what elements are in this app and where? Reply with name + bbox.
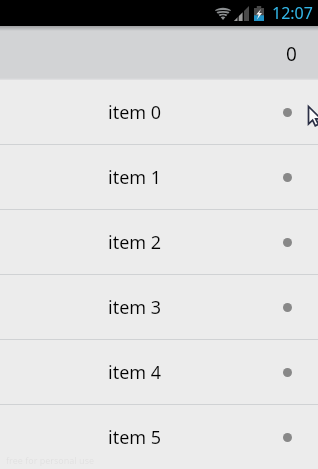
staticText: 0 — [286, 41, 297, 67]
button[interactable]: Select item 4 — [270, 348, 318, 396]
staticText: item 4 — [108, 360, 162, 385]
staticText: item 5 — [108, 425, 162, 450]
staticText: item 0 — [108, 100, 162, 125]
button[interactable]: Select item 5 — [270, 413, 318, 461]
button[interactable]: Select item 2 — [270, 218, 318, 266]
button[interactable]: Select item 0 — [270, 88, 318, 136]
button[interactable]: item 5 — [0, 405, 318, 469]
button[interactable]: item 2 — [0, 210, 318, 274]
button[interactable]: Select item 3 — [270, 283, 318, 331]
staticText: item 2 — [108, 230, 162, 255]
button[interactable]: item 1 — [0, 145, 318, 209]
button[interactable]: item 0 — [0, 80, 318, 144]
staticText: item 3 — [108, 295, 162, 320]
button[interactable]: item 3 — [0, 275, 318, 339]
button[interactable]: Select item 1 — [270, 153, 318, 201]
button[interactable]: item 4 — [0, 340, 318, 404]
staticText: 12:07 — [272, 2, 313, 24]
staticText: item 1 — [108, 165, 162, 190]
